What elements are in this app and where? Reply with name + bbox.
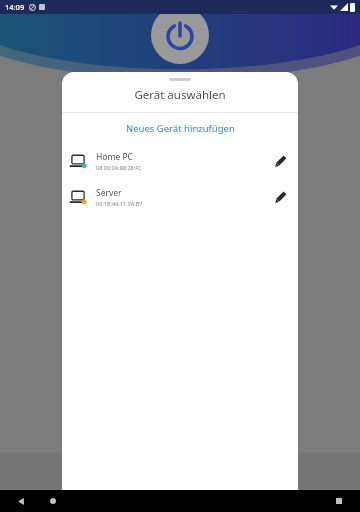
button[interactable]: Edit Server	[270, 186, 292, 208]
staticText: Neues Gerät hinzufügen	[126, 122, 235, 135]
button[interactable]: Back	[12, 492, 30, 510]
staticText: Gerät auswählen	[62, 87, 298, 103]
staticText: Home PC	[96, 151, 133, 163]
button[interactable]: Neues Gerät hinzufügen	[62, 122, 298, 135]
staticText: 14:09	[5, 2, 25, 12]
button[interactable]: Power	[151, 6, 209, 64]
button[interactable]: Edit Home PC	[270, 150, 292, 172]
button[interactable]: Home	[44, 492, 62, 510]
button[interactable]: Recent apps	[330, 492, 348, 510]
staticText: Server	[96, 187, 122, 199]
staticText: 00:1B:44:11:3A:B7	[96, 200, 143, 207]
button[interactable]: Home PC	[62, 147, 298, 175]
staticText: 08:00:0A:88:28:FC	[96, 164, 142, 171]
button[interactable]: Server	[62, 183, 298, 211]
